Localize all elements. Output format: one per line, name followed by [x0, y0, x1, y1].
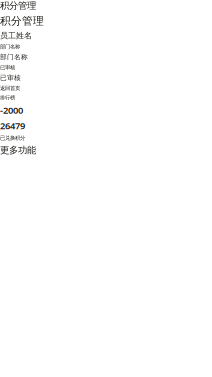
staticText: 积分管理 [0, 0, 36, 11]
staticText: 更多功能 [0, 144, 36, 156]
staticText: 已审核 [0, 64, 15, 71]
staticText: 返回首页 [0, 85, 20, 91]
staticText: 积分管理 [0, 14, 44, 28]
staticText: 已兑换积分 [0, 135, 25, 141]
staticText: 部门名称 [0, 43, 20, 50]
staticText: 员工姓名 [0, 31, 32, 40]
staticText: 部门名称 [0, 53, 28, 61]
staticText: -2000 [0, 104, 23, 116]
staticText: 排行榜 [0, 94, 15, 101]
staticText: 已审核 [0, 74, 21, 82]
staticText: 26479 [0, 119, 25, 132]
